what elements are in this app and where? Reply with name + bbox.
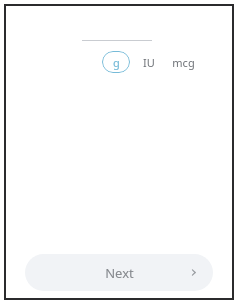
button[interactable]: g (102, 51, 130, 73)
button[interactable]: mcg (168, 51, 198, 73)
staticText: g (113, 55, 120, 70)
staticText: Next (105, 264, 134, 282)
button[interactable]: Next (25, 254, 213, 291)
staticText: IU (143, 55, 155, 70)
button[interactable]: IU (138, 51, 160, 73)
staticText: mcg (172, 55, 195, 70)
other: Next (189, 268, 198, 277)
